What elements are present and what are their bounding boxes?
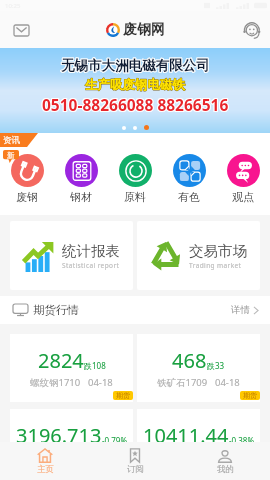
staticText: 新 <box>7 151 15 160</box>
button[interactable]: 2824 <box>10 334 133 402</box>
button[interactable]: 交易市场 <box>137 221 260 290</box>
button[interactable]: 468 <box>137 334 260 402</box>
staticText: 04-18 <box>215 376 240 389</box>
staticText: 详情 <box>231 304 250 316</box>
staticText: 沪深300 <box>38 451 74 464</box>
staticText: 生产吸废钢电磁铁 <box>85 77 185 93</box>
staticText: 期货 <box>243 391 257 400</box>
button[interactable]: Messages <box>9 18 33 42</box>
staticText: 跌33 <box>207 360 225 371</box>
staticText: 期货行情 <box>33 303 79 317</box>
staticText: 0510-88266088 88266516 <box>42 94 229 115</box>
staticText: -0.79% <box>102 435 128 446</box>
button[interactable]: 观点 <box>216 154 270 204</box>
button[interactable]: 10411.44 <box>137 409 260 477</box>
button[interactable]: 有色 <box>162 154 216 204</box>
staticText: 资讯 <box>3 135 20 146</box>
staticText: 铁矿石1709 <box>157 376 208 389</box>
button[interactable]: 新 <box>0 154 54 204</box>
staticText: 有色 <box>178 190 200 204</box>
staticText: Trading market <box>189 261 242 270</box>
staticText: 原料 <box>124 190 146 204</box>
button[interactable]: Customer service <box>240 19 262 41</box>
staticText: 04-18 <box>88 376 113 389</box>
staticText: 废钢 <box>16 190 38 204</box>
staticText: 无锡市大洲电磁有限公司 <box>61 57 210 74</box>
staticText: 期货 <box>116 466 130 475</box>
staticText: 观点 <box>232 190 254 204</box>
staticText: 钢材 <box>70 190 92 204</box>
staticText: 统计报表 <box>62 242 120 260</box>
button[interactable]: 原料 <box>108 154 162 204</box>
button[interactable]: 钢材 <box>54 154 108 204</box>
staticText: 2824 <box>38 347 84 374</box>
button[interactable]: 详情 <box>231 304 259 316</box>
staticText: 我的 <box>217 464 234 475</box>
button[interactable]: 我的 <box>180 448 270 475</box>
staticText: 废钢网 <box>123 21 165 39</box>
staticText: 04-18 <box>209 451 234 464</box>
staticText: 10411.44 <box>143 422 229 449</box>
staticText: -0.38% <box>229 435 255 446</box>
staticText: 无锡市大洲电磁有限公司 <box>61 57 210 74</box>
staticText: 10:25 <box>5 2 21 10</box>
button[interactable]: 3196.713 <box>10 409 133 477</box>
staticText: 跌108 <box>84 360 106 371</box>
staticText: 螺纹钢1710 <box>30 376 81 389</box>
staticText: 0510-88266088 88266516 <box>42 94 229 115</box>
staticText: 3196.713 <box>16 422 102 449</box>
staticText: Statistical report <box>62 261 120 270</box>
staticText: 订阅 <box>127 464 144 475</box>
button[interactable]: 订阅 <box>90 448 180 475</box>
staticText: 主页 <box>37 464 54 475</box>
button[interactable]: 主页 <box>0 448 90 475</box>
button[interactable]: 统计报表 <box>10 221 133 290</box>
staticText: 468 <box>172 347 207 374</box>
staticText: 生产吸废钢电磁铁 <box>85 77 185 93</box>
staticText: 期货 <box>116 391 130 400</box>
staticText: 交易市场 <box>189 242 247 260</box>
